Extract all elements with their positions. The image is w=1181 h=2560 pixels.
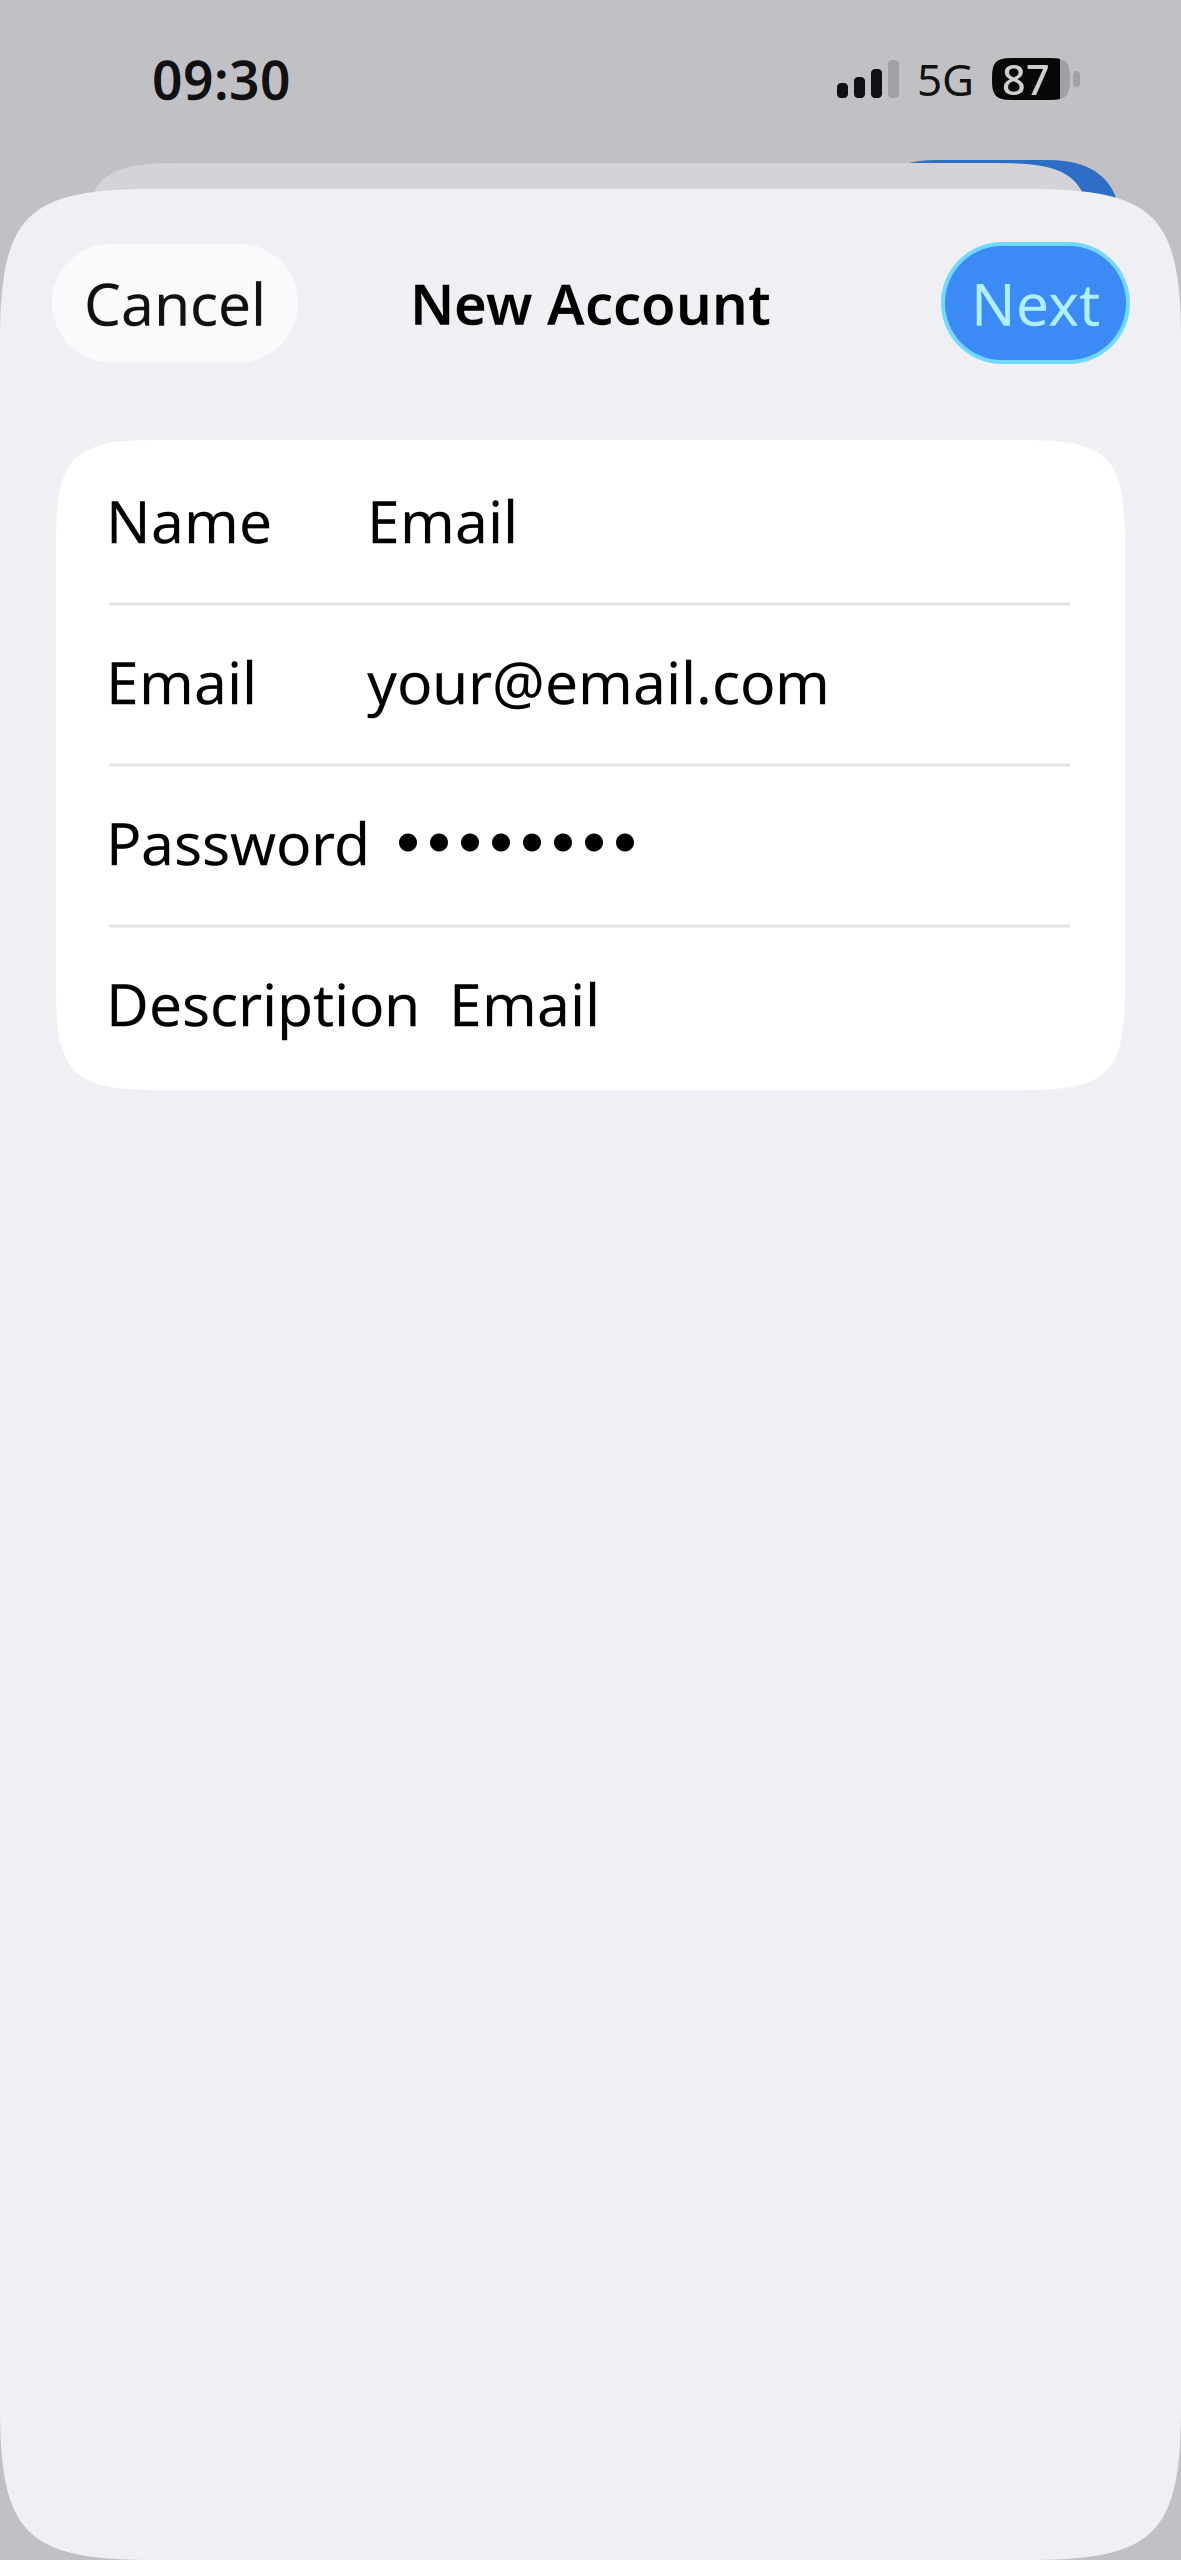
staticText: Name — [106, 481, 272, 559]
button[interactable]: Description — [56, 927, 1125, 1085]
staticText: 5G — [917, 50, 974, 108]
button[interactable]: Email — [56, 605, 1125, 763]
staticText: Description — [106, 964, 420, 1042]
staticText: Email — [367, 481, 518, 559]
button[interactable]: Next — [942, 243, 1129, 363]
button[interactable]: Cancel — [52, 243, 298, 362]
staticText: 87 — [1002, 52, 1050, 106]
staticText: Password — [106, 803, 370, 881]
staticText: your@email.com — [367, 642, 830, 720]
staticText: New Account — [410, 266, 771, 340]
button[interactable]: Password — [56, 766, 1125, 924]
staticText: Email — [106, 642, 257, 720]
button[interactable]: Name — [56, 444, 1125, 602]
staticText: 09:30 — [152, 44, 291, 114]
staticText: Next — [971, 264, 1100, 342]
staticText: Cancel — [84, 264, 266, 342]
staticText: Email — [449, 964, 600, 1042]
